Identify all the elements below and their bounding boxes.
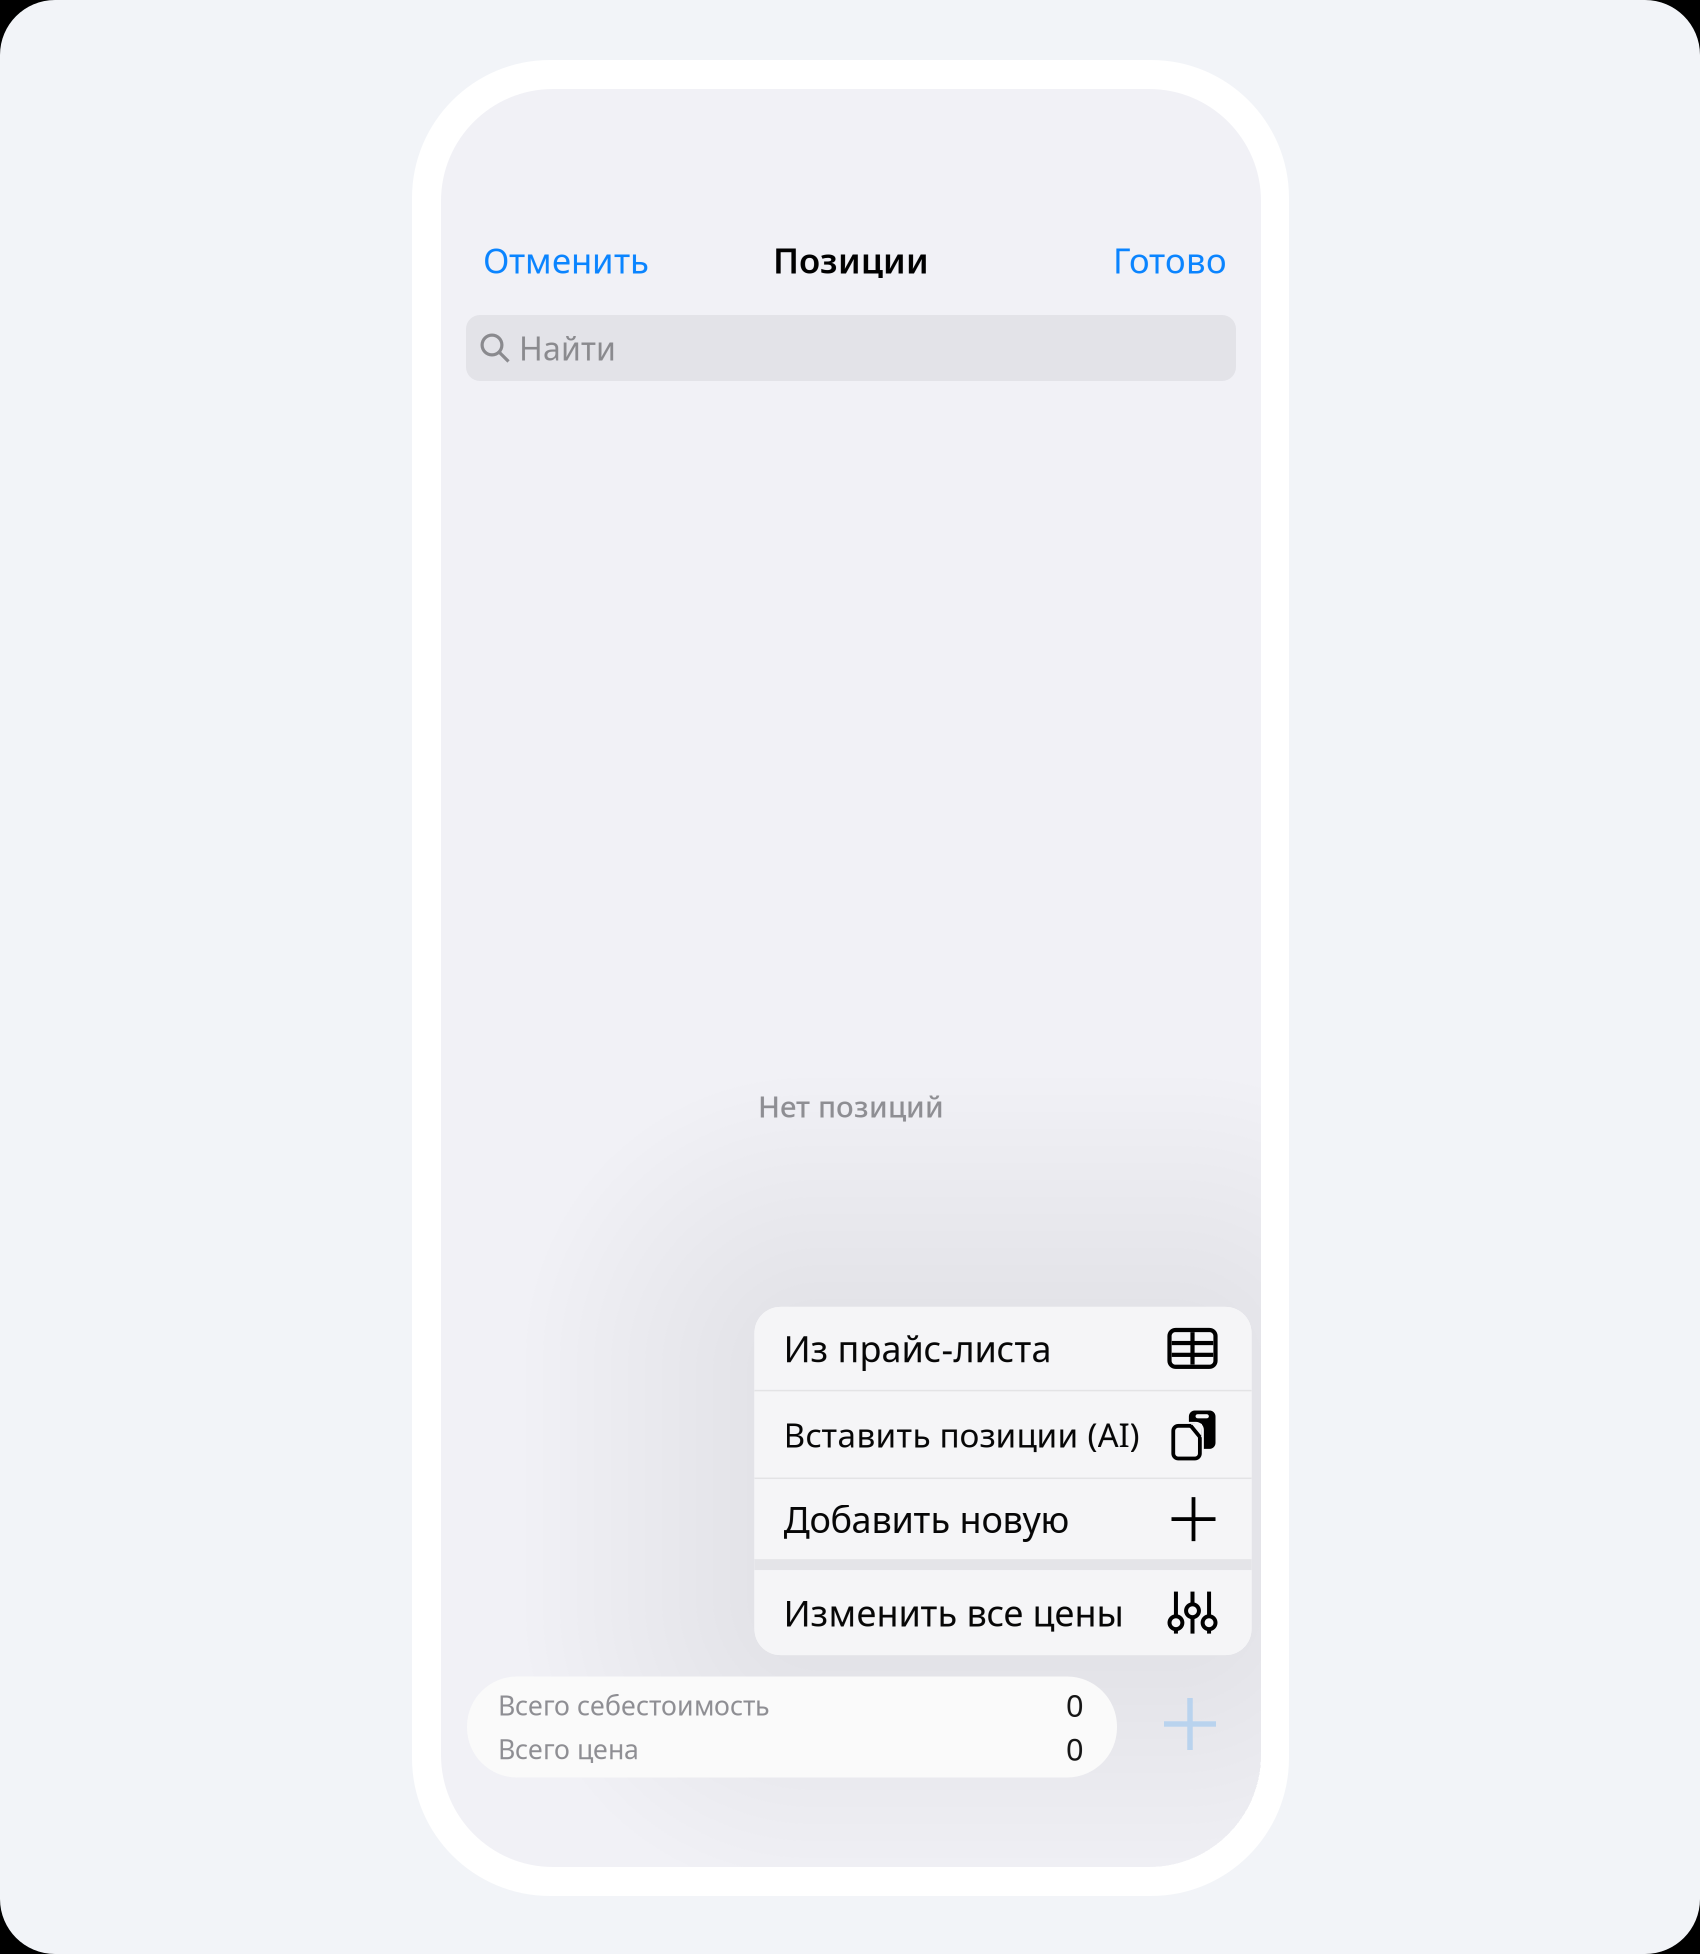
staticText: Найти bbox=[519, 327, 616, 369]
staticText: 0 bbox=[1066, 1728, 1084, 1769]
staticText: Из прайс-листа bbox=[783, 1324, 1051, 1372]
button[interactable]: Найти bbox=[466, 315, 1236, 381]
staticText: Отменить bbox=[483, 237, 649, 283]
button[interactable]: Вставить позиции (AI) bbox=[754, 1391, 1251, 1477]
staticText: Изменить все цены bbox=[783, 1589, 1123, 1636]
staticText: Готово bbox=[1113, 237, 1227, 283]
staticText: Позиции bbox=[773, 237, 929, 283]
staticText: Всего цена bbox=[498, 1731, 639, 1767]
button[interactable]: Из прайс-листа bbox=[754, 1307, 1251, 1390]
button[interactable]: Отменить bbox=[483, 233, 713, 287]
staticText: Всего себестоимость bbox=[498, 1687, 770, 1723]
staticText: Добавить новую bbox=[783, 1495, 1069, 1543]
button[interactable]: Готово bbox=[1027, 233, 1227, 287]
staticText: Нет позиций bbox=[758, 1086, 944, 1125]
button[interactable]: Добавить bbox=[1140, 1674, 1240, 1774]
button[interactable]: Всего себестоимость bbox=[467, 1676, 1117, 1777]
button[interactable]: Добавить новую bbox=[754, 1479, 1251, 1559]
staticText: Вставить позиции (AI) bbox=[783, 1412, 1139, 1457]
button[interactable]: Изменить все цены bbox=[754, 1570, 1251, 1655]
staticText: 0 bbox=[1066, 1685, 1084, 1725]
